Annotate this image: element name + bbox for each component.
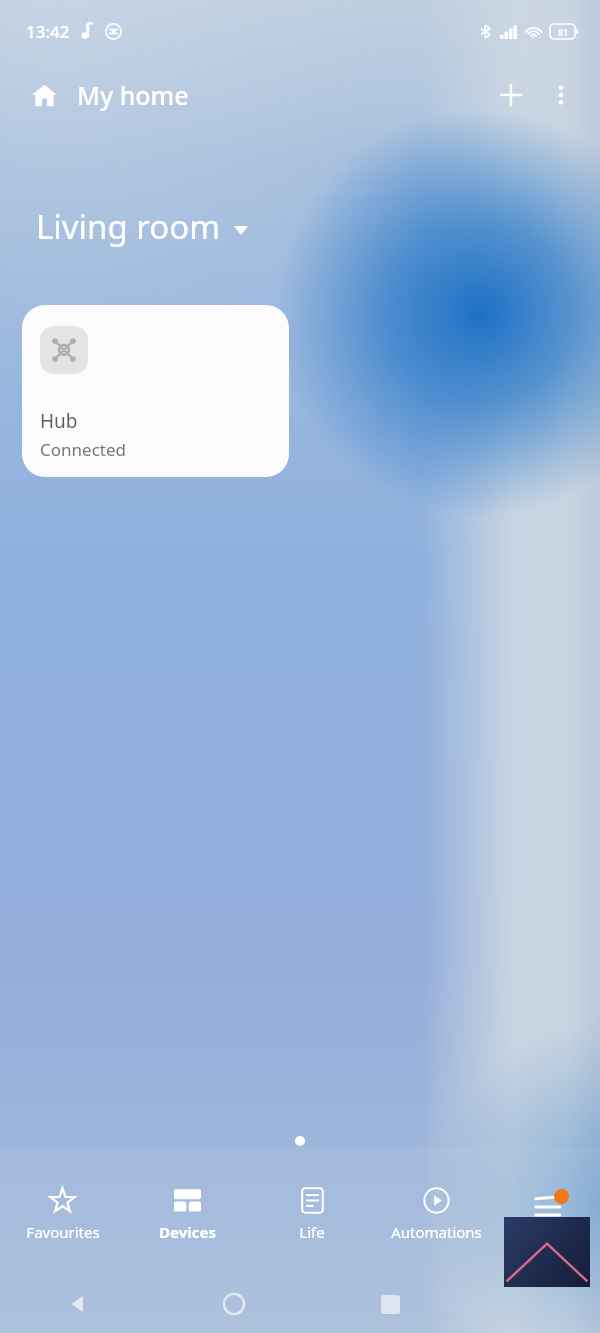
staticText: 13:42 xyxy=(26,20,70,43)
staticText: Automations xyxy=(391,1222,482,1242)
button[interactable]: More options xyxy=(536,70,586,120)
button[interactable]: Recents xyxy=(312,1275,468,1333)
button[interactable]: Add xyxy=(486,70,536,120)
button[interactable]: Life xyxy=(250,1168,374,1260)
button[interactable]: Home xyxy=(22,73,66,117)
button[interactable]: Devices xyxy=(125,1168,250,1260)
staticText: Life xyxy=(299,1222,325,1242)
button[interactable]: Hub xyxy=(22,305,289,477)
button[interactable]: Video thumbnail xyxy=(504,1217,590,1287)
staticText: Devices xyxy=(159,1222,216,1242)
staticText: Favourites xyxy=(26,1222,100,1242)
button[interactable]: Menu xyxy=(498,1168,600,1260)
button[interactable]: Automations xyxy=(374,1168,498,1260)
button[interactable]: Favourites xyxy=(0,1168,125,1260)
staticText: Hub xyxy=(40,408,78,434)
button[interactable]: Back xyxy=(0,1275,156,1333)
button[interactable]: Home xyxy=(156,1275,312,1333)
button[interactable]: Living room xyxy=(36,204,248,249)
staticText: My home xyxy=(77,78,189,112)
staticText: Connected xyxy=(40,438,126,461)
staticText: 81 xyxy=(558,26,569,38)
staticText: Living room xyxy=(36,204,221,249)
